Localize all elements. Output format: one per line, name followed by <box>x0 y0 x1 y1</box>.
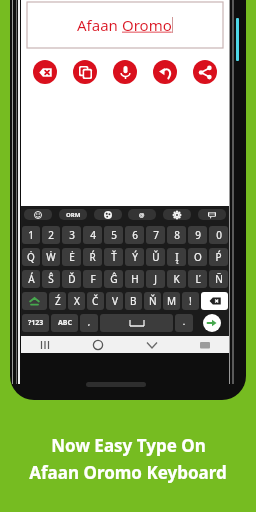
staticText: Ŝ <box>48 272 54 286</box>
staticText: Č <box>92 294 99 308</box>
button[interactable]: Á <box>22 270 40 288</box>
button[interactable]: Themes <box>94 209 122 220</box>
staticText: Ý <box>132 250 138 264</box>
staticText: M <box>167 294 177 308</box>
staticText: ORM <box>66 211 81 219</box>
button[interactable]: Ŝ <box>42 270 60 288</box>
button[interactable]: 4 <box>83 226 102 244</box>
staticText: Afaan Oromo Keyboard <box>29 461 227 484</box>
staticText: X <box>74 294 80 308</box>
staticText: Ź <box>55 294 61 308</box>
staticText: Į <box>175 250 179 264</box>
button[interactable]: Copy <box>73 60 97 84</box>
button[interactable]: Ý <box>125 248 144 266</box>
staticText: 4 <box>90 228 96 242</box>
staticText: Now Easy Type On <box>51 434 206 457</box>
staticText: @ <box>139 211 145 219</box>
button[interactable]: Settings <box>163 209 191 220</box>
button[interactable]: Back <box>144 337 160 353</box>
staticText: Ṕ <box>215 250 222 264</box>
button[interactable]: Č <box>87 292 104 310</box>
button[interactable]: Į <box>167 248 186 266</box>
button[interactable]: 1 <box>22 226 40 244</box>
button[interactable]: Ź <box>49 292 66 310</box>
staticText: Á <box>28 272 35 286</box>
button[interactable]: Clear text <box>33 60 57 84</box>
staticText: 2 <box>48 228 54 242</box>
staticText: B <box>130 294 137 308</box>
button[interactable]: ! <box>182 292 199 310</box>
button[interactable]: Shift <box>22 292 47 310</box>
button[interactable]: 3 <box>62 226 81 244</box>
button[interactable]: Ẇ <box>42 248 60 266</box>
staticText: 9 <box>195 228 201 242</box>
button[interactable]: Recents <box>37 337 53 353</box>
button[interactable]: K <box>167 270 186 288</box>
button[interactable]: Ľ <box>188 270 207 288</box>
button[interactable]: Afaan <box>27 2 223 48</box>
staticText: Afaan <box>77 15 122 35</box>
button[interactable]: Ė <box>62 248 81 266</box>
staticText: Ď <box>68 272 76 286</box>
button[interactable]: X <box>68 292 85 310</box>
button[interactable]: ?123 <box>22 314 49 332</box>
button[interactable]: Ŕ <box>83 248 102 266</box>
button[interactable]: Voice input <box>113 60 137 84</box>
button[interactable]: Ď <box>62 270 81 288</box>
staticText: Ľ <box>195 272 201 286</box>
button[interactable]: 6 <box>125 226 144 244</box>
button[interactable]: 7 <box>146 226 165 244</box>
button[interactable]: Ĝ <box>104 270 123 288</box>
button[interactable]: , <box>80 314 98 332</box>
staticText: Oromo <box>122 15 172 35</box>
staticText: 3 <box>69 228 75 242</box>
button[interactable]: Ṕ <box>209 248 228 266</box>
staticText: J <box>154 272 157 286</box>
button[interactable]: 9 <box>188 226 207 244</box>
staticText: Ė <box>69 250 75 264</box>
button[interactable]: Space <box>100 314 173 332</box>
button[interactable]: V <box>106 292 123 310</box>
staticText: Ǔ <box>152 250 160 264</box>
staticText: K <box>173 272 180 286</box>
button[interactable]: Q̇ <box>22 248 40 266</box>
button[interactable]: J <box>146 270 165 288</box>
button[interactable]: B <box>125 292 142 310</box>
button[interactable]: 5 <box>104 226 123 244</box>
button[interactable]: @ <box>128 209 156 220</box>
button[interactable]: 8 <box>167 226 186 244</box>
staticText: , <box>88 318 90 328</box>
button[interactable]: Undo <box>153 60 177 84</box>
button[interactable]: Enter <box>203 314 221 332</box>
button[interactable]: O <box>188 248 207 266</box>
staticText: 5 <box>111 228 117 242</box>
staticText: 1 <box>28 228 34 242</box>
staticText: 6 <box>132 228 138 242</box>
button[interactable]: H <box>125 270 144 288</box>
button[interactable]: F <box>83 270 102 288</box>
button[interactable]: Emoji <box>24 209 52 220</box>
button[interactable]: ABC <box>51 314 78 332</box>
button[interactable]: 0 <box>209 226 228 244</box>
staticText: Ẇ <box>46 250 56 264</box>
staticText: 8 <box>174 228 180 242</box>
button[interactable]: ORM <box>59 209 87 220</box>
staticText: V <box>112 294 118 308</box>
button[interactable]: . <box>175 314 193 332</box>
button[interactable]: Keyboard layout <box>198 209 226 220</box>
staticText: Ň <box>149 294 157 308</box>
button[interactable]: M <box>163 292 180 310</box>
staticText: ?123 <box>28 318 44 328</box>
button[interactable]: Switch keyboard <box>197 337 213 353</box>
button[interactable]: Ǔ <box>146 248 165 266</box>
button[interactable]: Backspace <box>201 292 228 310</box>
staticText: ! <box>189 294 192 308</box>
staticText: Ĝ <box>110 272 118 286</box>
staticText: Q̇ <box>27 250 35 264</box>
button[interactable]: Ň <box>144 292 161 310</box>
button[interactable]: Share <box>193 60 217 84</box>
button[interactable]: Ť <box>104 248 123 266</box>
button[interactable]: Ñ <box>209 270 228 288</box>
button[interactable]: 2 <box>42 226 60 244</box>
button[interactable]: Home <box>90 337 106 353</box>
